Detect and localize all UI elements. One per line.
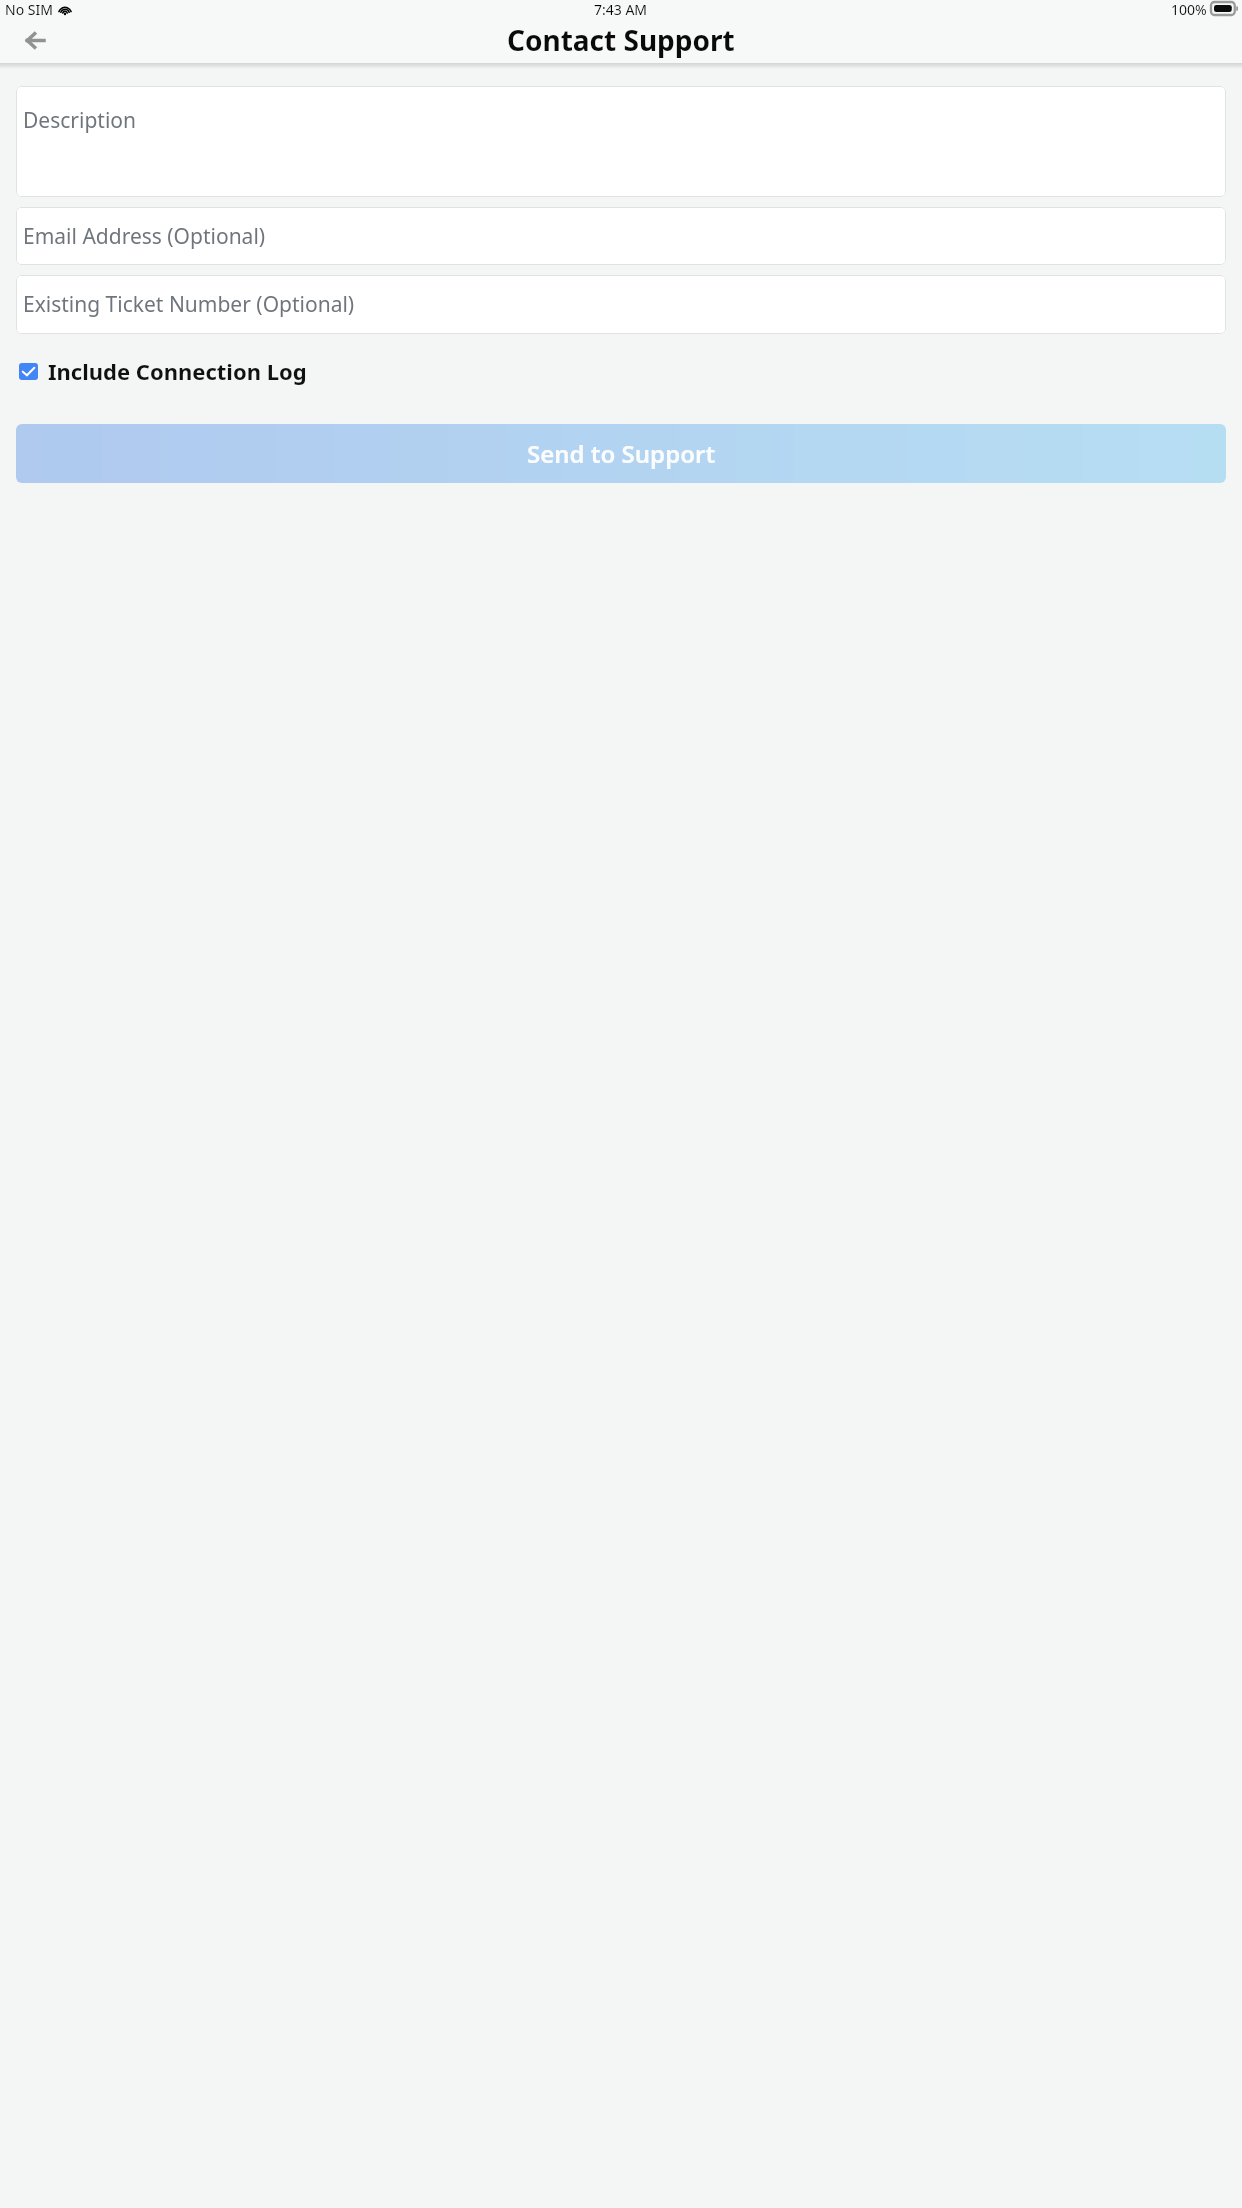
button[interactable]: Include Connection Log: [16, 356, 1226, 386]
staticText: Contact Support: [507, 21, 735, 59]
button[interactable]: Back: [14, 19, 56, 61]
staticText: Email Address (Optional): [23, 222, 266, 251]
staticText: Description: [23, 106, 137, 135]
staticText: No SIM: [5, 0, 53, 17]
button[interactable]: Email Address (Optional): [16, 207, 1226, 265]
button[interactable]: Send to Support: [16, 424, 1226, 483]
staticText: Send to Support: [527, 437, 716, 470]
staticText: Existing Ticket Number (Optional): [23, 290, 355, 319]
button[interactable]: Existing Ticket Number (Optional): [16, 275, 1226, 334]
button[interactable]: Description: [16, 86, 1226, 197]
staticText: 100%: [1171, 0, 1207, 17]
staticText: Include Connection Log: [48, 356, 307, 386]
staticText: 7:43 AM: [594, 0, 648, 17]
